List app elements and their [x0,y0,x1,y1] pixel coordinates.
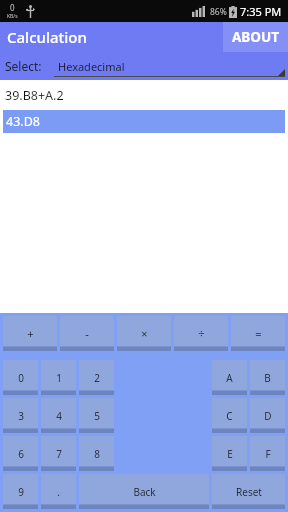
button[interactable]: 7 [41,436,76,471]
staticText: 9 [18,485,24,499]
button[interactable]: = [231,316,285,351]
staticText: 7 [56,447,62,461]
staticText: 0 [10,2,15,13]
button[interactable]: 9 [3,474,38,509]
staticText: F [265,447,271,461]
button[interactable]: . [41,474,76,509]
staticText: 8 [94,447,100,461]
button[interactable]: × [117,316,171,351]
staticText: 3 [18,409,24,423]
button[interactable]: Hexadecimal [54,52,288,80]
staticText: 1 [56,371,62,385]
staticText: 43.D8 [6,113,40,130]
staticText: - [85,326,89,341]
staticText: 0 [18,371,24,385]
staticText: 4 [56,409,62,423]
staticText: 39.B8+A.2 [5,87,64,104]
button[interactable]: + [3,316,57,351]
button[interactable]: C [212,398,247,433]
button[interactable]: B [250,360,285,395]
button[interactable]: Reset [212,474,285,509]
staticText: Back [133,485,156,499]
button[interactable]: D [250,398,285,433]
button[interactable]: ABOUT [223,22,288,52]
staticText: + [27,326,34,341]
button[interactable]: 8 [79,436,114,471]
button[interactable]: 1 [41,360,76,395]
button[interactable]: 0 [3,360,38,395]
staticText: Calculation [7,27,87,47]
staticText: 7:35 PM [240,4,282,19]
staticText: E [227,447,233,461]
button[interactable]: 4 [41,398,76,433]
staticText: ÷ [198,326,205,341]
staticText: 5 [94,409,100,423]
staticText: 6 [18,447,24,461]
staticText: × [141,326,148,341]
staticText: D [264,409,272,423]
button[interactable]: F [250,436,285,471]
staticText: A [226,371,233,385]
button[interactable]: Back [79,474,209,509]
button[interactable]: 5 [79,398,114,433]
button[interactable]: A [212,360,247,395]
staticText: 2 [94,371,100,385]
button[interactable]: 3 [3,398,38,433]
staticText: C [226,409,233,423]
button[interactable]: 2 [79,360,114,395]
staticText: KB/s [7,13,18,20]
staticText: Hexadecimal [58,59,125,74]
staticText: . [57,485,60,499]
staticText: = [255,326,262,341]
staticText: 86% [210,6,227,18]
button[interactable]: 6 [3,436,38,471]
button[interactable]: E [212,436,247,471]
button[interactable]: ÷ [174,316,228,351]
button[interactable]: - [60,316,114,351]
staticText: B [264,371,271,385]
staticText: ABOUT [232,28,279,46]
staticText: Select: [5,58,42,74]
staticText: Reset [236,485,262,499]
